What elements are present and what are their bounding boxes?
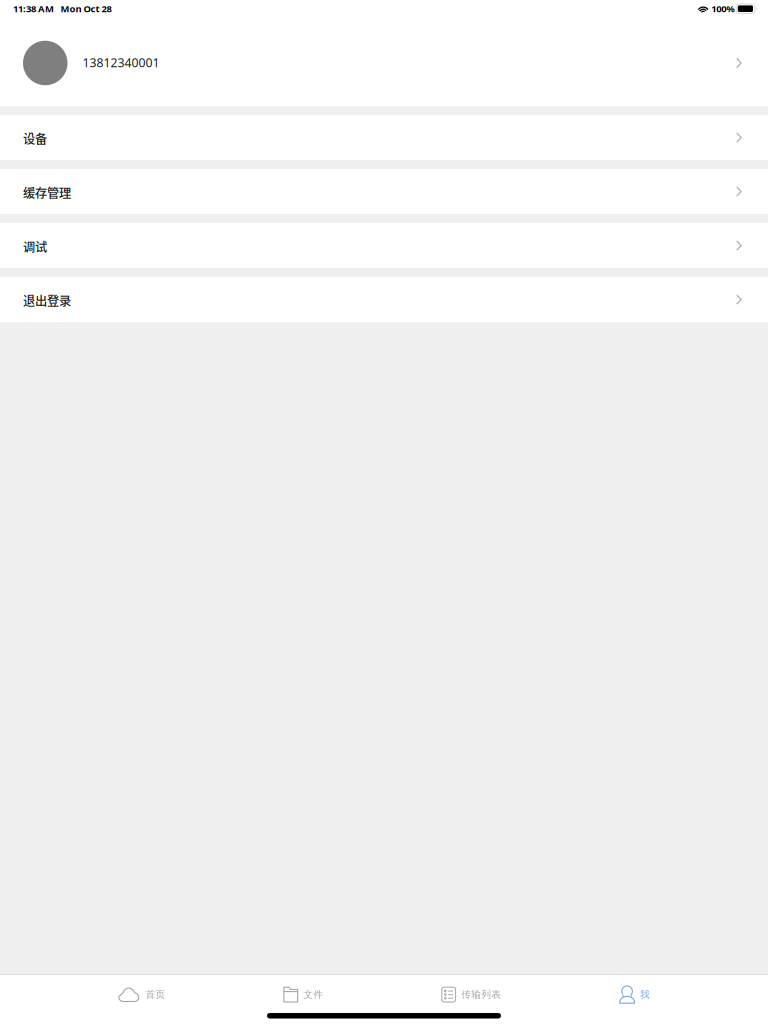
button[interactable]: 设备 bbox=[0, 115, 768, 160]
staticText: 调试 bbox=[23, 238, 47, 255]
button[interactable]: 缓存管理 bbox=[0, 169, 768, 214]
button[interactable]: 首页 bbox=[118, 985, 165, 1005]
button[interactable]: 退出登录 bbox=[0, 277, 768, 322]
button[interactable]: 文件 bbox=[283, 985, 323, 1005]
staticText: 设备 bbox=[23, 130, 47, 147]
staticText: Mon Oct 28 bbox=[60, 2, 111, 15]
staticText: 缓存管理 bbox=[23, 184, 71, 201]
staticText: 我 bbox=[640, 988, 650, 1001]
staticText: 13812340001 bbox=[82, 54, 159, 71]
staticText: 传输列表 bbox=[461, 988, 501, 1001]
staticText: 11:38 AM bbox=[13, 2, 54, 15]
button[interactable]: 传输列表 bbox=[441, 985, 501, 1005]
staticText: 退出登录 bbox=[23, 292, 71, 309]
button[interactable]: 13812340001 bbox=[0, 20, 768, 106]
button[interactable]: 我 bbox=[619, 985, 650, 1005]
button[interactable]: 调试 bbox=[0, 223, 768, 268]
staticText: 文件 bbox=[303, 988, 323, 1001]
staticText: 100% bbox=[711, 2, 735, 15]
staticText: 首页 bbox=[145, 988, 165, 1001]
